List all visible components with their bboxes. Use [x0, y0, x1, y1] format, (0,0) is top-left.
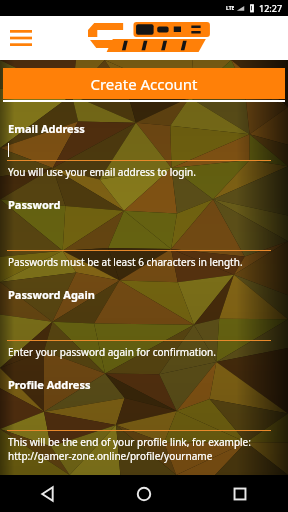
- staticText: Email Address: [8, 121, 85, 136]
- staticText: You will use your email address to login…: [8, 165, 196, 179]
- staticText: Enter your password again for confirmati…: [8, 345, 216, 359]
- staticText: Password Again: [8, 287, 95, 302]
- staticText: Profile Address: [8, 377, 91, 392]
- button[interactable]: Back: [0, 475, 96, 512]
- button[interactable]: [8, 302, 288, 340]
- staticText: This will be the end of your profile lin…: [8, 435, 251, 449]
- button[interactable]: Recents: [192, 475, 288, 512]
- button[interactable]: Home: [96, 475, 192, 512]
- staticText: Password: [8, 197, 61, 212]
- button[interactable]: Create Account: [3, 68, 285, 99]
- staticText: Passwords must be at least 6 characters …: [8, 255, 243, 269]
- button[interactable]: [8, 392, 288, 430]
- staticText: Create Account: [90, 74, 198, 94]
- staticText: http://gamer-zone.online/profile/yournam…: [8, 449, 213, 463]
- staticText: LTE: [226, 5, 235, 12]
- button[interactable]: Menu: [8, 25, 34, 51]
- staticText: 12:27: [259, 2, 283, 14]
- button[interactable]: [8, 212, 288, 250]
- button[interactable]: [8, 136, 288, 160]
